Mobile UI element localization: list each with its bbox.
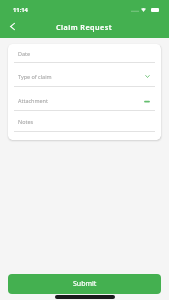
staticText: 11:14 (13, 6, 28, 14)
staticText: Submit (73, 279, 97, 289)
staticText: Type of claim (18, 73, 52, 80)
staticText: Notes (18, 118, 34, 125)
staticText: Attachment (18, 97, 48, 104)
staticText: Date (18, 50, 31, 57)
button[interactable]: Date (14, 44, 155, 63)
button[interactable]: Notes (14, 111, 155, 132)
button[interactable]: Attachment (14, 87, 155, 111)
button[interactable]: Back (2, 18, 22, 35)
button[interactable]: Submit (8, 274, 161, 294)
staticText: Claim Request (56, 22, 113, 32)
button[interactable]: Type of claim (14, 63, 155, 87)
